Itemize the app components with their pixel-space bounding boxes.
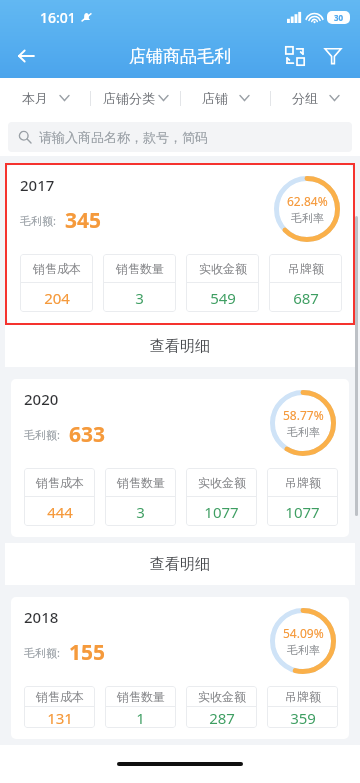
button[interactable]: Compare: [276, 37, 314, 75]
button[interactable]: 吊牌额: [267, 468, 338, 526]
staticText: 687: [293, 288, 319, 308]
staticText: 毛利额:: [24, 645, 60, 660]
staticText: 58.77%: [283, 407, 324, 423]
staticText: 销售成本: [36, 689, 84, 704]
staticText: 本月: [22, 90, 48, 106]
button[interactable]: 销售成本: [24, 468, 95, 526]
staticText: 30: [334, 12, 344, 23]
staticText: 吊牌额: [285, 689, 321, 704]
staticText: 155: [69, 638, 106, 667]
staticText: 请输入商品名称，款号，简码: [39, 129, 208, 145]
button[interactable]: 店铺: [181, 78, 270, 118]
button[interactable]: 查看明细: [5, 543, 355, 585]
staticText: 毛利率: [291, 211, 324, 225]
staticText: 287: [209, 708, 235, 728]
staticText: 54.09%: [283, 625, 324, 641]
button[interactable]: 实收金额: [186, 254, 259, 312]
staticText: 1077: [204, 502, 239, 522]
staticText: 444: [47, 502, 73, 522]
staticText: 549: [210, 288, 236, 308]
button[interactable]: 销售数量: [105, 468, 176, 526]
button[interactable]: 2017: [7, 165, 353, 323]
staticText: 633: [69, 420, 106, 449]
staticText: 毛利额:: [20, 213, 56, 228]
button[interactable]: 销售成本: [20, 254, 93, 312]
button[interactable]: 2020: [11, 379, 349, 537]
staticText: 16:01: [40, 8, 76, 27]
staticText: 实收金额: [198, 689, 246, 704]
button[interactable]: Back: [6, 36, 46, 76]
staticText: 131: [47, 708, 73, 728]
button[interactable]: Filter: [314, 37, 352, 75]
staticText: 销售数量: [116, 261, 164, 276]
staticText: 吊牌额: [288, 261, 324, 276]
staticText: 查看明细: [150, 555, 210, 574]
staticText: 345: [65, 206, 102, 235]
staticText: 毛利率: [287, 425, 320, 439]
button[interactable]: 请输入商品名称，款号，简码: [8, 122, 352, 152]
staticText: 2018: [24, 607, 59, 627]
staticText: 实收金额: [199, 261, 247, 276]
button[interactable]: 实收金额: [186, 468, 257, 526]
staticText: 359: [290, 708, 316, 728]
staticText: 销售成本: [33, 261, 81, 276]
staticText: 店铺商品毛利: [129, 46, 231, 67]
staticText: 分组: [292, 90, 318, 106]
button[interactable]: 分组: [271, 78, 360, 118]
staticText: 1077: [285, 502, 320, 522]
staticText: 毛利额:: [24, 427, 60, 442]
staticText: 店铺分类: [103, 90, 155, 106]
staticText: 62.84%: [287, 193, 328, 209]
staticText: 1: [136, 708, 145, 728]
button[interactable]: 销售数量: [103, 254, 176, 312]
staticText: 销售数量: [117, 475, 165, 490]
staticText: 3: [135, 288, 144, 308]
staticText: 204: [44, 288, 70, 308]
staticText: 毛利率: [287, 643, 320, 657]
staticText: 3: [136, 502, 145, 522]
staticText: 店铺: [202, 90, 228, 106]
button[interactable]: 2018: [11, 597, 349, 739]
button[interactable]: 查看明细: [5, 325, 355, 367]
staticText: 2017: [20, 175, 55, 195]
staticText: 吊牌额: [285, 475, 321, 490]
button[interactable]: 销售成本: [24, 686, 95, 728]
staticText: 销售数量: [117, 689, 165, 704]
button[interactable]: 实收金额: [186, 686, 257, 728]
staticText: 实收金额: [198, 475, 246, 490]
staticText: 2020: [24, 389, 59, 409]
button[interactable]: 店铺分类: [91, 78, 180, 118]
button[interactable]: 销售数量: [105, 686, 176, 728]
button[interactable]: 吊牌额: [269, 254, 342, 312]
staticText: 查看明细: [150, 337, 210, 356]
button[interactable]: 吊牌额: [267, 686, 338, 728]
staticText: 销售成本: [36, 475, 84, 490]
button[interactable]: 本月: [0, 78, 90, 118]
